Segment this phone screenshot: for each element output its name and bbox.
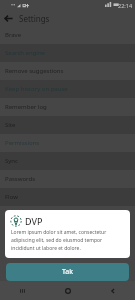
staticText: 22:14 bbox=[118, 2, 133, 9]
staticText: Tak bbox=[62, 267, 73, 277]
button[interactable]: Back bbox=[90, 281, 135, 300]
button[interactable]: Remember log bbox=[0, 98, 135, 116]
staticText: Keep history on pause bbox=[5, 85, 68, 93]
staticText: Site bbox=[5, 121, 16, 129]
staticText: DVP bbox=[25, 215, 43, 227]
button[interactable]: Remove suggestions bbox=[0, 62, 135, 80]
staticText: Remember log bbox=[5, 103, 47, 111]
button[interactable]: Back bbox=[0, 10, 16, 26]
staticText: Remove suggestions bbox=[5, 67, 64, 75]
button[interactable]: Recents bbox=[0, 281, 45, 300]
staticText: Brave bbox=[5, 31, 22, 39]
staticText: Search engine bbox=[5, 49, 45, 57]
button[interactable]: Home bbox=[45, 281, 90, 300]
staticText: Flow bbox=[5, 193, 18, 201]
staticText: Passwords bbox=[5, 175, 36, 183]
button[interactable]: Tak bbox=[6, 263, 129, 281]
staticText: Permissions bbox=[5, 139, 40, 147]
staticText: Settings bbox=[19, 13, 50, 24]
staticText: Lorem ipsum dolor sit amet, consectetur … bbox=[11, 229, 121, 252]
staticText: Sync bbox=[5, 157, 18, 165]
